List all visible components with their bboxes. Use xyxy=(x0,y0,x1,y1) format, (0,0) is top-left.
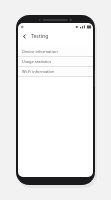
button[interactable]: Back xyxy=(18,30,31,43)
staticText: Wi-Fi information xyxy=(22,69,55,74)
button[interactable]: Wi-Fi information xyxy=(18,67,93,76)
staticText: Testing xyxy=(31,33,49,40)
button[interactable]: Device information xyxy=(18,47,93,56)
staticText: Device information xyxy=(22,49,58,54)
staticText: Usage statistics xyxy=(22,59,52,64)
button[interactable]: Usage statistics xyxy=(18,57,93,66)
